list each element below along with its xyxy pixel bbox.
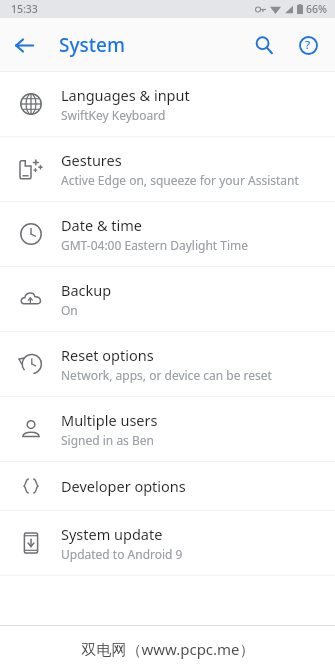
- button[interactable]: Date & time: [0, 202, 335, 266]
- staticText: GMT-04:00 Eastern Daylight Time: [61, 237, 249, 253]
- button[interactable]: System update: [0, 511, 335, 575]
- staticText: Backup: [61, 280, 112, 300]
- staticText: Gestures: [61, 150, 122, 170]
- staticText: Signed in as Ben: [61, 432, 154, 448]
- button[interactable]: Search: [242, 23, 286, 67]
- button[interactable]: Back: [0, 21, 48, 69]
- button[interactable]: Developer options: [0, 462, 335, 510]
- staticText: 66%: [306, 2, 327, 16]
- staticText: System update: [61, 524, 163, 544]
- button[interactable]: Languages & input: [0, 72, 335, 136]
- staticText: System: [59, 32, 125, 58]
- staticText: Reset options: [61, 345, 154, 365]
- staticText: SwiftKey Keyboard: [61, 107, 166, 123]
- staticText: 15:33: [11, 2, 38, 16]
- staticText: Network, apps, or device can be reset: [61, 367, 272, 383]
- staticText: Date & time: [61, 215, 142, 235]
- button[interactable]: Gestures: [0, 137, 335, 201]
- staticText: Developer options: [61, 476, 186, 496]
- staticText: Active Edge on, squeeze for your Assista…: [61, 172, 299, 188]
- staticText: Languages & input: [61, 85, 190, 105]
- staticText: Multiple users: [61, 410, 158, 430]
- staticText: Updated to Android 9: [61, 546, 183, 562]
- button[interactable]: Backup: [0, 267, 335, 331]
- button[interactable]: Help: [286, 23, 330, 67]
- staticText: ?: [305, 37, 311, 53]
- staticText: 双电网（www.pcpc.me）: [81, 639, 255, 659]
- button[interactable]: Multiple users: [0, 397, 335, 461]
- button[interactable]: Reset options: [0, 332, 335, 396]
- staticText: On: [61, 302, 78, 318]
